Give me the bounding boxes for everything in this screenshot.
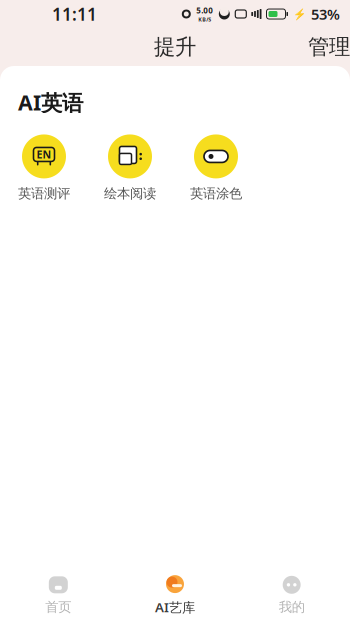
staticText: 英语测评: [18, 185, 70, 202]
button[interactable]: AI艺库: [117, 568, 233, 622]
staticText: AI艺库: [155, 598, 195, 616]
button[interactable]: 提升: [140, 28, 210, 66]
button[interactable]: EN: [13, 134, 75, 202]
button[interactable]: 首页: [0, 569, 117, 621]
staticText: 53%: [311, 4, 340, 24]
staticText: 首页: [45, 599, 71, 615]
staticText: AI英语: [18, 88, 83, 116]
staticText: 英语涂色: [190, 185, 242, 202]
staticText: 提升: [154, 34, 196, 60]
staticText: KB/S: [198, 16, 211, 23]
button[interactable]: 绘本阅读: [99, 134, 161, 202]
staticText: 管理: [308, 34, 350, 60]
staticText: ⚡: [293, 8, 306, 20]
staticText: 绘本阅读: [104, 185, 156, 202]
staticText: 11:11: [52, 2, 97, 25]
button[interactable]: 英语涂色: [185, 134, 247, 202]
staticText: 我的: [279, 599, 305, 615]
button[interactable]: 我的: [233, 569, 350, 621]
staticText: 5.00: [196, 5, 213, 16]
staticText: EN: [36, 147, 51, 162]
button[interactable]: 管理: [298, 28, 350, 66]
